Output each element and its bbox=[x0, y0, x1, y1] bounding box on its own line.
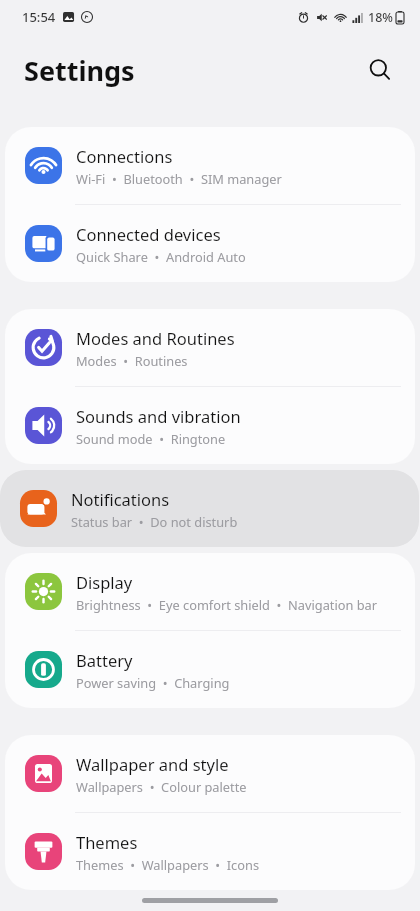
staticText: Battery bbox=[76, 649, 133, 671]
staticText: Quick Share • Android Auto bbox=[76, 248, 246, 265]
staticText: Power saving • Charging bbox=[76, 674, 230, 691]
staticText: Display bbox=[76, 571, 133, 593]
button[interactable]: Search bbox=[356, 46, 404, 94]
staticText: Settings bbox=[24, 52, 135, 89]
staticText: Sound mode • Ringtone bbox=[76, 430, 226, 447]
staticText: Wallpapers • Colour palette bbox=[76, 778, 247, 795]
staticText: Sounds and vibration bbox=[76, 405, 241, 427]
staticText: 18% bbox=[368, 9, 393, 26]
staticText: Connections bbox=[76, 145, 173, 167]
button[interactable]: Connected devices bbox=[5, 205, 415, 282]
button[interactable]: Modes and Routines bbox=[5, 309, 415, 386]
staticText: Themes • Wallpapers • Icons bbox=[76, 856, 260, 873]
staticText: Modes and Routines bbox=[76, 327, 235, 349]
staticText: Notifications bbox=[71, 488, 170, 510]
staticText: Wi-Fi • Bluetooth • SIM manager bbox=[76, 170, 282, 187]
staticText: Themes bbox=[76, 831, 138, 853]
staticText: Brightness • Eye comfort shield • Naviga… bbox=[76, 596, 378, 613]
button[interactable]: Sounds and vibration bbox=[5, 387, 415, 464]
button[interactable]: Wallpaper and style bbox=[5, 735, 415, 812]
button[interactable]: Connections bbox=[5, 127, 415, 204]
button[interactable]: Battery bbox=[5, 631, 415, 708]
button[interactable]: Display bbox=[5, 553, 415, 630]
staticText: Wallpaper and style bbox=[76, 753, 229, 775]
staticText: Status bar • Do not disturb bbox=[71, 513, 238, 530]
staticText: 15:54 bbox=[22, 8, 56, 26]
button[interactable]: Notifications bbox=[0, 470, 419, 547]
staticText: Modes • Routines bbox=[76, 352, 188, 369]
staticText: Connected devices bbox=[76, 223, 221, 245]
button[interactable]: Themes bbox=[5, 813, 415, 890]
